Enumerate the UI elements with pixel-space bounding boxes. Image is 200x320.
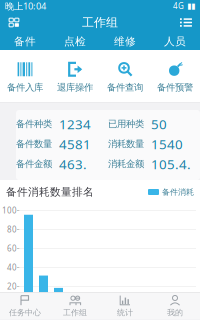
staticText: 50 bbox=[151, 115, 167, 133]
staticText: 工作组 bbox=[63, 308, 87, 317]
staticText: 晚上10:04 bbox=[5, 0, 46, 12]
button[interactable]: 我的 bbox=[150, 293, 200, 319]
button[interactable]: 人员 bbox=[150, 33, 200, 50]
staticText: 点检 bbox=[64, 35, 86, 48]
staticText: 任务中心 bbox=[9, 308, 41, 317]
staticText: 备件入库 bbox=[7, 82, 43, 93]
button[interactable]: 备件 bbox=[0, 33, 50, 50]
button[interactable]: 退库操作 bbox=[50, 50, 100, 101]
staticText: 备件 bbox=[14, 35, 36, 48]
staticText: 40 bbox=[7, 262, 17, 273]
staticText: 备件数量 bbox=[16, 138, 52, 150]
staticText: 60 bbox=[7, 243, 17, 254]
staticText: 工作组 bbox=[82, 15, 118, 30]
button[interactable]: 列表 bbox=[174, 12, 198, 32]
staticText: 80 bbox=[7, 224, 17, 235]
staticText: 1234 bbox=[59, 115, 91, 133]
staticText: 备件预警 bbox=[157, 82, 193, 93]
button[interactable]: 备件查询 bbox=[100, 50, 150, 101]
button[interactable]: 备件预警 bbox=[150, 50, 200, 101]
button[interactable]: 任务中心 bbox=[0, 293, 50, 319]
staticText: 统计 bbox=[117, 308, 133, 317]
staticText: 退库操作 bbox=[57, 82, 93, 93]
staticText: ▮▮ bbox=[184, 1, 195, 11]
staticText: 备件消耗数量排名 bbox=[6, 185, 94, 198]
staticText: 备件种类 bbox=[16, 118, 52, 130]
staticText: 人员 bbox=[164, 35, 186, 48]
staticText: 4581 bbox=[59, 135, 91, 153]
button[interactable]: 点检 bbox=[50, 33, 100, 50]
button[interactable]: 统计 bbox=[100, 293, 150, 319]
staticText: 消耗金额 bbox=[108, 158, 144, 170]
staticText: 105.4. bbox=[151, 155, 191, 173]
staticText: 463. bbox=[59, 155, 87, 173]
staticText: 备件金额 bbox=[16, 158, 52, 170]
staticText: 消耗数量 bbox=[108, 138, 144, 150]
staticText: 已用种类 bbox=[108, 118, 144, 130]
button[interactable]: 模块 bbox=[2, 12, 26, 32]
staticText: 备件消耗 bbox=[162, 187, 194, 197]
staticText: 备件查询 bbox=[107, 82, 143, 93]
button[interactable]: 工作组 bbox=[50, 293, 100, 319]
button[interactable]: 维修 bbox=[100, 33, 150, 50]
button[interactable]: 备件入库 bbox=[0, 50, 50, 101]
staticText: 4G bbox=[173, 1, 184, 11]
staticText: 维修 bbox=[114, 35, 136, 48]
staticText: 100 bbox=[2, 205, 17, 216]
staticText: 20 bbox=[7, 281, 17, 292]
staticText: 我的 bbox=[167, 308, 183, 317]
staticText: 1540 bbox=[151, 135, 183, 153]
